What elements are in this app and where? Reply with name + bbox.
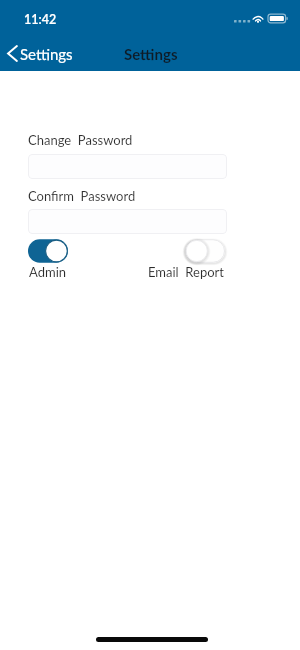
staticText: Settings	[20, 45, 73, 63]
staticText: Change Password	[28, 132, 133, 148]
button[interactable]	[28, 209, 227, 234]
staticText: 11:42	[24, 12, 57, 27]
button[interactable]: Email Report toggle, off	[185, 238, 225, 264]
button[interactable]: Settings	[2, 42, 78, 66]
button[interactable]	[28, 154, 227, 179]
button[interactable]: Admin toggle, on	[28, 238, 68, 264]
button[interactable]: Admin	[29, 264, 67, 280]
staticText: Settings	[124, 45, 178, 63]
staticText: Confirm Password	[28, 188, 136, 204]
button[interactable]: Email Report	[148, 264, 224, 280]
